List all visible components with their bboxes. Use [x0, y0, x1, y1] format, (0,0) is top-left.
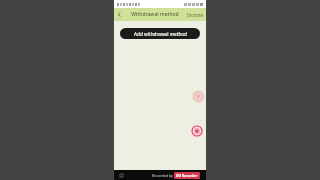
- staticText: DU Recorder: [176, 173, 198, 178]
- staticText: Add withdrawal method: [134, 31, 187, 37]
- button[interactable]: Recents: [118, 172, 124, 178]
- button[interactable]: Add withdrawal method: [120, 28, 200, 39]
- button[interactable]: Stop recording: [190, 124, 204, 138]
- staticText: Recorded by: [152, 173, 173, 178]
- staticText: Income: [187, 12, 203, 18]
- button[interactable]: Back: [114, 9, 125, 20]
- staticText: Withdrawal method: [131, 11, 179, 18]
- button[interactable]: Recorder controls: [192, 90, 205, 103]
- button[interactable]: Income: [184, 10, 206, 20]
